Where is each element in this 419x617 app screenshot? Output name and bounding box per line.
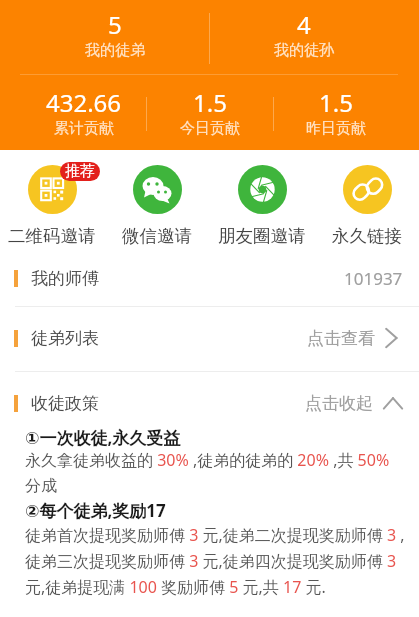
staticText: 朋友圈邀请: [218, 225, 306, 247]
staticText: 微信邀请: [122, 225, 192, 247]
button[interactable]: 推荐: [0, 150, 104, 247]
staticText: 5: [108, 8, 122, 41]
staticText: 永久拿徒弟收益的 30% ,徒弟的徒弟的 20% ,共 50% 分成: [25, 449, 390, 495]
button[interactable]: 微信邀请: [104, 150, 209, 247]
button[interactable]: 永久链接: [314, 150, 419, 247]
staticText: 点击查看: [307, 328, 375, 349]
staticText: 101937: [344, 267, 403, 290]
staticText: 昨日贡献: [306, 119, 366, 138]
staticText: 我的徒弟: [85, 41, 145, 60]
staticText: 1.5: [319, 86, 353, 119]
staticText: 推荐: [65, 162, 95, 181]
staticText: ②每个徒弟,奖励17: [25, 499, 166, 522]
staticText: 徒弟列表: [31, 328, 99, 349]
staticText: 今日贡献: [180, 119, 240, 138]
staticText: ①一次收徒,永久受益: [25, 426, 181, 449]
button[interactable]: 收徒政策: [0, 378, 419, 428]
staticText: 4: [297, 8, 311, 41]
staticText: 432.66: [46, 86, 122, 119]
staticText: 累计贡献: [54, 119, 114, 138]
button[interactable]: 我的师傅: [0, 250, 419, 306]
staticText: 我的徒孙: [274, 41, 334, 60]
staticText: 收徒政策: [31, 393, 99, 414]
staticText: 永久链接: [332, 225, 402, 247]
staticText: 徒弟首次提现奖励师傅 3 元,徒弟二次提现奖励师傅 3 , 徒弟三次提现奖励师傅…: [25, 524, 405, 597]
button[interactable]: 徒弟列表: [0, 310, 419, 366]
staticText: 1.5: [193, 86, 227, 119]
staticText: 我的师傅: [31, 268, 99, 289]
staticText: 二维码邀请: [8, 225, 96, 247]
staticText: 点击收起: [305, 393, 373, 414]
button[interactable]: 朋友圈邀请: [209, 150, 314, 247]
